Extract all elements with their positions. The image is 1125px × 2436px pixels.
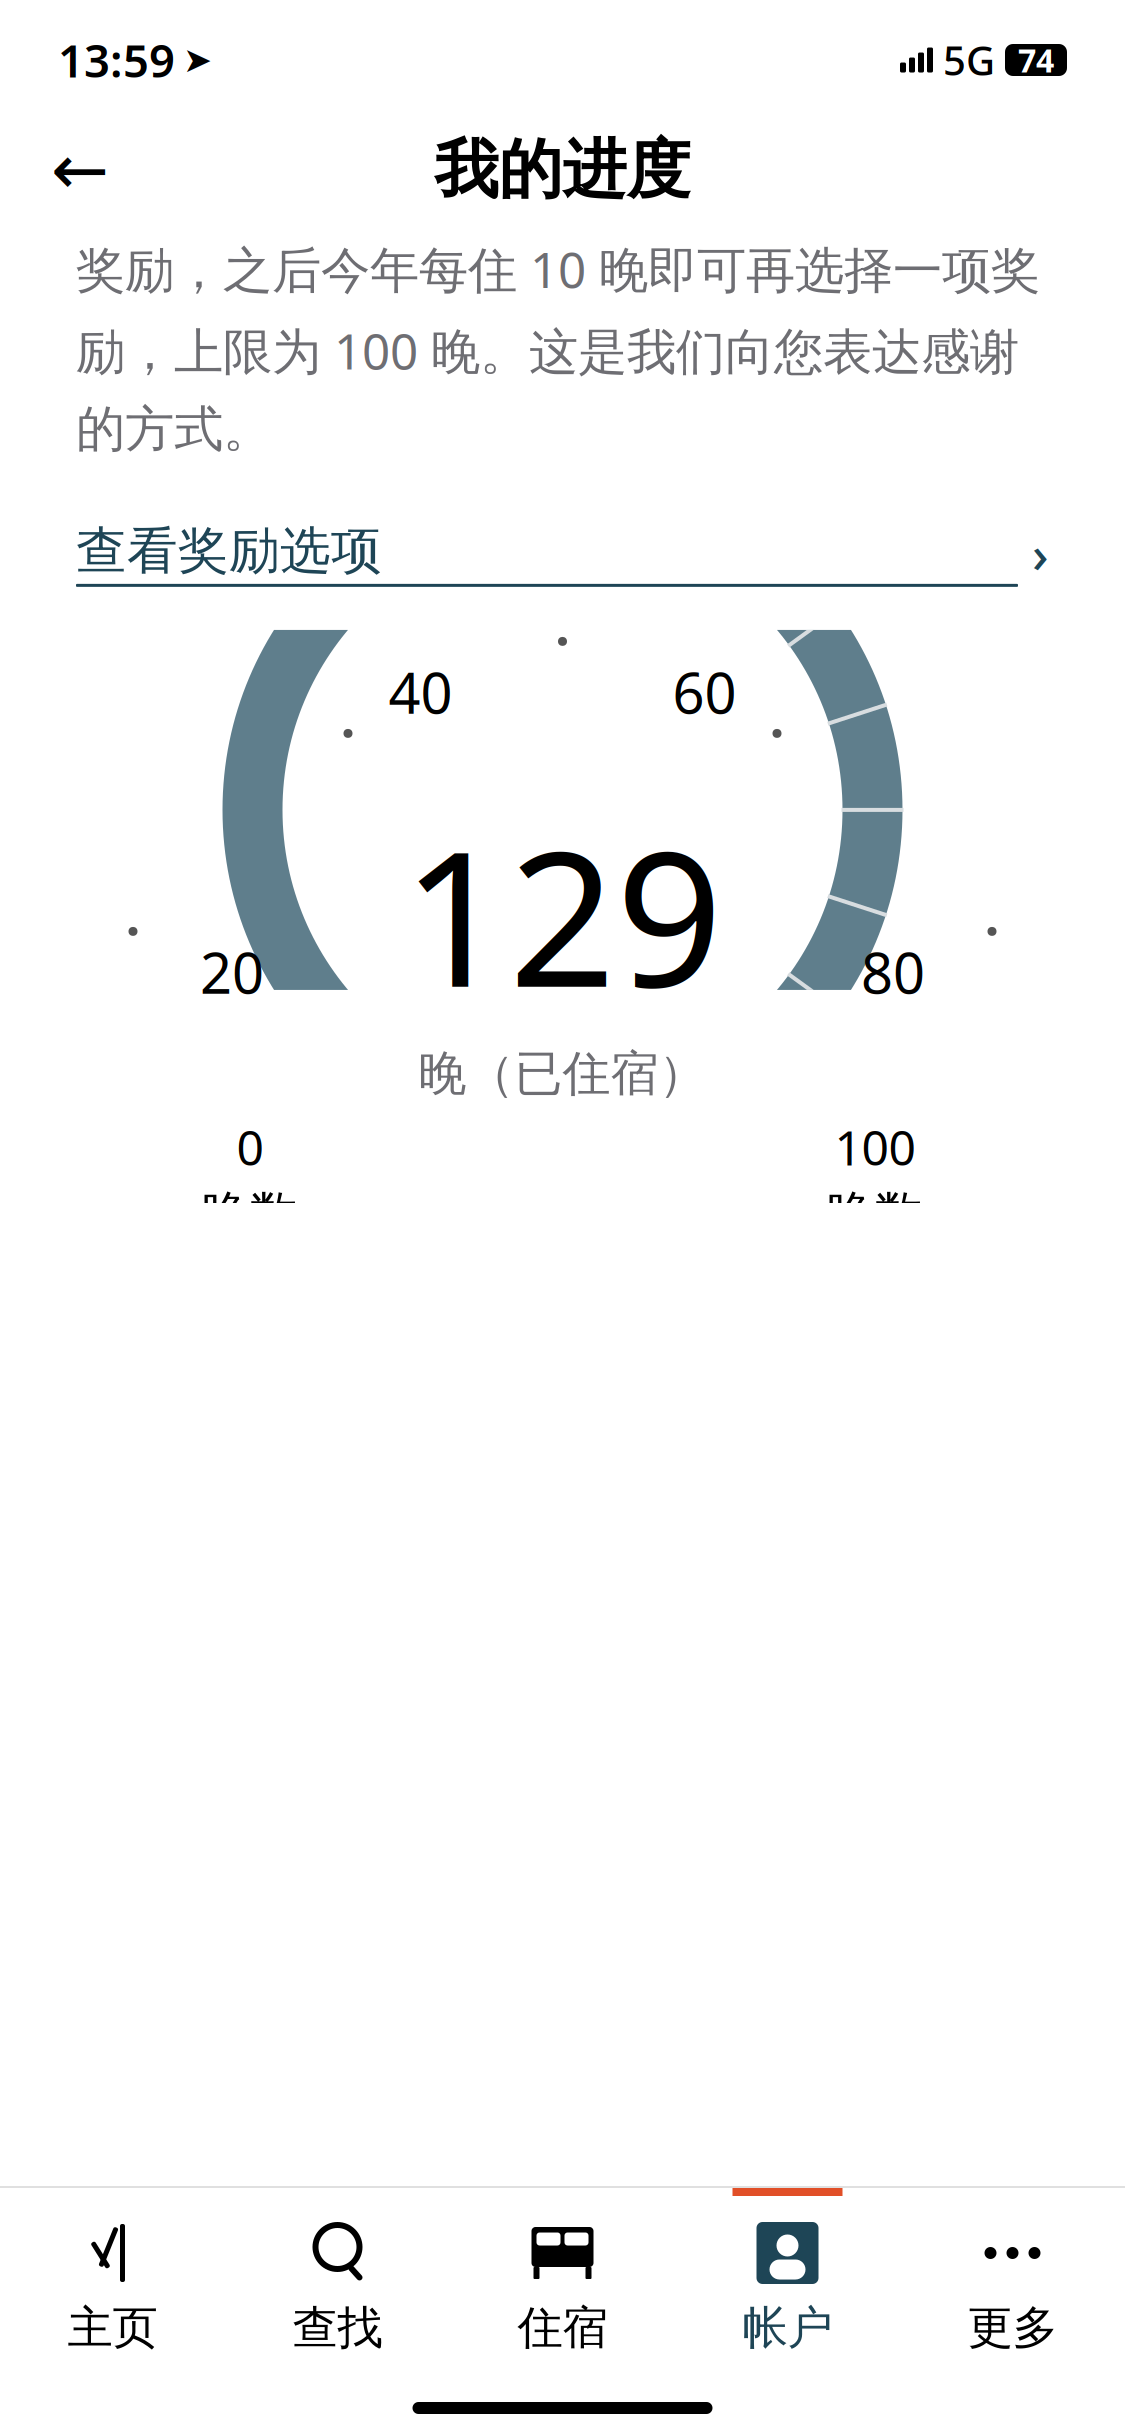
staticText: 80 [861,935,925,1009]
button[interactable]: 查找 [225,2188,450,2368]
staticText: 查看奖励选项 [76,520,382,582]
staticText: ← [51,131,109,209]
staticText: 100 [834,1115,915,1179]
staticText: 或者 [511,2351,613,2413]
staticText: 20 [200,935,264,1009]
staticText: 奖励，之后今年每住 10 晚即可再选择一项奖励，上限为 100 晚。这是我们向您… [76,236,1040,460]
staticText: 5G [943,33,995,86]
button[interactable]: 主页 [0,2188,225,2368]
staticText: 晚数 [202,1185,298,1244]
staticText: 晚（已住宿） [418,1044,706,1103]
button[interactable]: 更多 [900,2188,1125,2368]
staticText: 晚数 [827,1185,923,1244]
staticText: 帐户 [742,2300,832,2356]
staticText: 13:59 [58,30,175,90]
staticText: 40 [388,655,452,729]
button[interactable]: 查看奖励选项 [0,460,1125,597]
button[interactable]: 帐户 [675,2188,900,2368]
staticText: 129 [402,790,723,1038]
staticText: › [1032,520,1049,587]
staticText: 住宿 [517,2300,607,2356]
staticText: 0 [236,1115,263,1179]
staticText: 更多 [967,2300,1057,2356]
button[interactable]: 返回 [30,125,130,215]
staticText: 74 [1018,39,1054,81]
button[interactable]: 住宿 [450,2188,675,2368]
staticText: 主页 [67,2300,157,2356]
staticText: 我的进度 [434,131,690,209]
staticText: 查找 [292,2300,382,2356]
staticText: 60 [672,655,736,729]
staticText: ➤ [183,40,212,80]
